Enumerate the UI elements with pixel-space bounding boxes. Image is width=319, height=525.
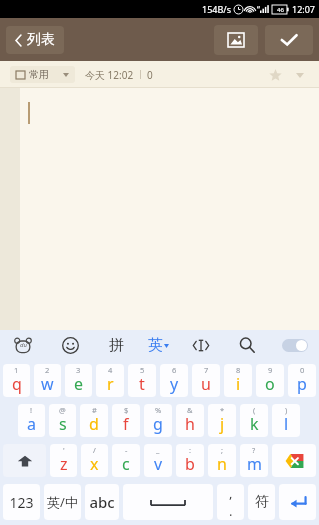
button[interactable]: $: [112, 404, 140, 437]
button[interactable]: !: [18, 404, 45, 437]
button[interactable]: 符: [248, 484, 275, 520]
staticText: ,: [229, 484, 233, 502]
button[interactable]: (: [240, 404, 268, 437]
staticText: :: [189, 445, 192, 455]
staticText: 符: [255, 493, 269, 511]
button[interactable]: 2: [34, 364, 61, 397]
button[interactable]: %: [144, 404, 172, 437]
staticText: 拼: [109, 336, 124, 355]
button[interactable]: 拼: [101, 330, 131, 360]
staticText: 154B/s: [202, 3, 231, 15]
button[interactable]: /: [81, 444, 108, 477]
staticText: ': [63, 445, 65, 455]
staticText: 0: [300, 365, 305, 375]
staticText: abc: [89, 492, 115, 512]
button[interactable]: Emoji: [55, 330, 85, 360]
staticText: v: [154, 453, 163, 475]
staticText: 8: [236, 365, 241, 375]
button[interactable]: 英: [148, 336, 169, 355]
button[interactable]: Enter: [279, 484, 316, 520]
button[interactable]: *: [208, 404, 236, 437]
staticText: t: [139, 373, 145, 395]
staticText: $: [124, 405, 129, 415]
staticText: c: [122, 453, 130, 475]
button[interactable]: &: [176, 404, 204, 437]
button[interactable]: 3: [65, 364, 92, 397]
button[interactable]: 123: [3, 484, 40, 520]
button[interactable]: :: [176, 444, 204, 477]
staticText: 今天 12:02: [85, 68, 134, 82]
button[interactable]: 8: [224, 364, 252, 397]
button[interactable]: Search: [232, 330, 262, 360]
button[interactable]: Insert image: [214, 25, 258, 55]
button[interactable]: 7: [192, 364, 220, 397]
staticText: “: [257, 4, 260, 15]
staticText: 常用: [29, 68, 49, 81]
staticText: *: [220, 405, 225, 415]
button[interactable]: @: [49, 404, 76, 437]
staticText: 3: [76, 365, 81, 375]
button[interactable]: _: [144, 444, 172, 477]
button[interactable]: 6: [160, 364, 188, 397]
staticText: du: [20, 341, 27, 349]
staticText: k: [250, 413, 259, 435]
staticText: h: [185, 413, 195, 435]
staticText: 6: [172, 365, 177, 375]
staticText: y: [170, 373, 179, 395]
staticText: 9: [268, 365, 273, 375]
button[interactable]: Shift: [3, 444, 46, 477]
button[interactable]: 4: [96, 364, 124, 397]
staticText: s: [59, 413, 67, 435]
button[interactable]: 英/中: [44, 484, 81, 520]
button[interactable]: 常用: [10, 66, 75, 83]
button[interactable]: ': [50, 444, 77, 477]
staticText: r: [107, 373, 114, 395]
staticText: w: [41, 373, 54, 395]
staticText: 列表: [27, 31, 55, 49]
staticText: m: [247, 453, 262, 475]
button[interactable]: 5: [128, 364, 156, 397]
staticText: _: [156, 445, 160, 455]
button[interactable]: ?: [240, 444, 268, 477]
staticText: 英/中: [47, 493, 78, 511]
staticText: .: [229, 502, 233, 520]
button[interactable]: 9: [256, 364, 284, 397]
button[interactable]: abc: [85, 484, 119, 520]
staticText: j: [220, 413, 225, 435]
button[interactable]: More: [291, 66, 309, 84]
button[interactable]: Favorite: [265, 65, 285, 85]
staticText: b: [185, 453, 195, 475]
staticText: %: [155, 405, 162, 415]
button[interactable]: Baidu input: [8, 330, 38, 360]
button[interactable]: Toggle: [279, 333, 311, 357]
staticText: #: [92, 405, 97, 415]
button[interactable]: Save: [265, 25, 313, 55]
button[interactable]: 0: [288, 364, 316, 397]
staticText: d: [89, 413, 99, 435]
button[interactable]: #: [80, 404, 108, 437]
staticText: 4: [108, 365, 113, 375]
button[interactable]: Move cursor: [186, 330, 216, 360]
staticText: (: [253, 405, 256, 415]
staticText: -: [125, 445, 128, 455]
staticText: x: [90, 453, 99, 475]
staticText: 5: [140, 365, 145, 375]
button[interactable]: 列表: [6, 26, 64, 54]
button[interactable]: Comma period: [217, 484, 244, 520]
staticText: e: [74, 373, 84, 395]
staticText: 2: [45, 365, 50, 375]
staticText: ?: [252, 445, 256, 455]
staticText: o: [265, 373, 275, 395]
staticText: &: [187, 405, 193, 415]
button[interactable]: 1: [3, 364, 30, 397]
staticText: u: [201, 373, 211, 395]
staticText: !: [30, 405, 33, 415]
button[interactable]: -: [112, 444, 140, 477]
button[interactable]: Delete: [272, 444, 316, 477]
button[interactable]: Space: [123, 484, 213, 520]
button[interactable]: ;: [208, 444, 236, 477]
staticText: 123: [9, 493, 34, 512]
staticText: i: [236, 373, 241, 395]
button[interactable]: ): [272, 404, 300, 437]
staticText: g: [153, 413, 163, 435]
